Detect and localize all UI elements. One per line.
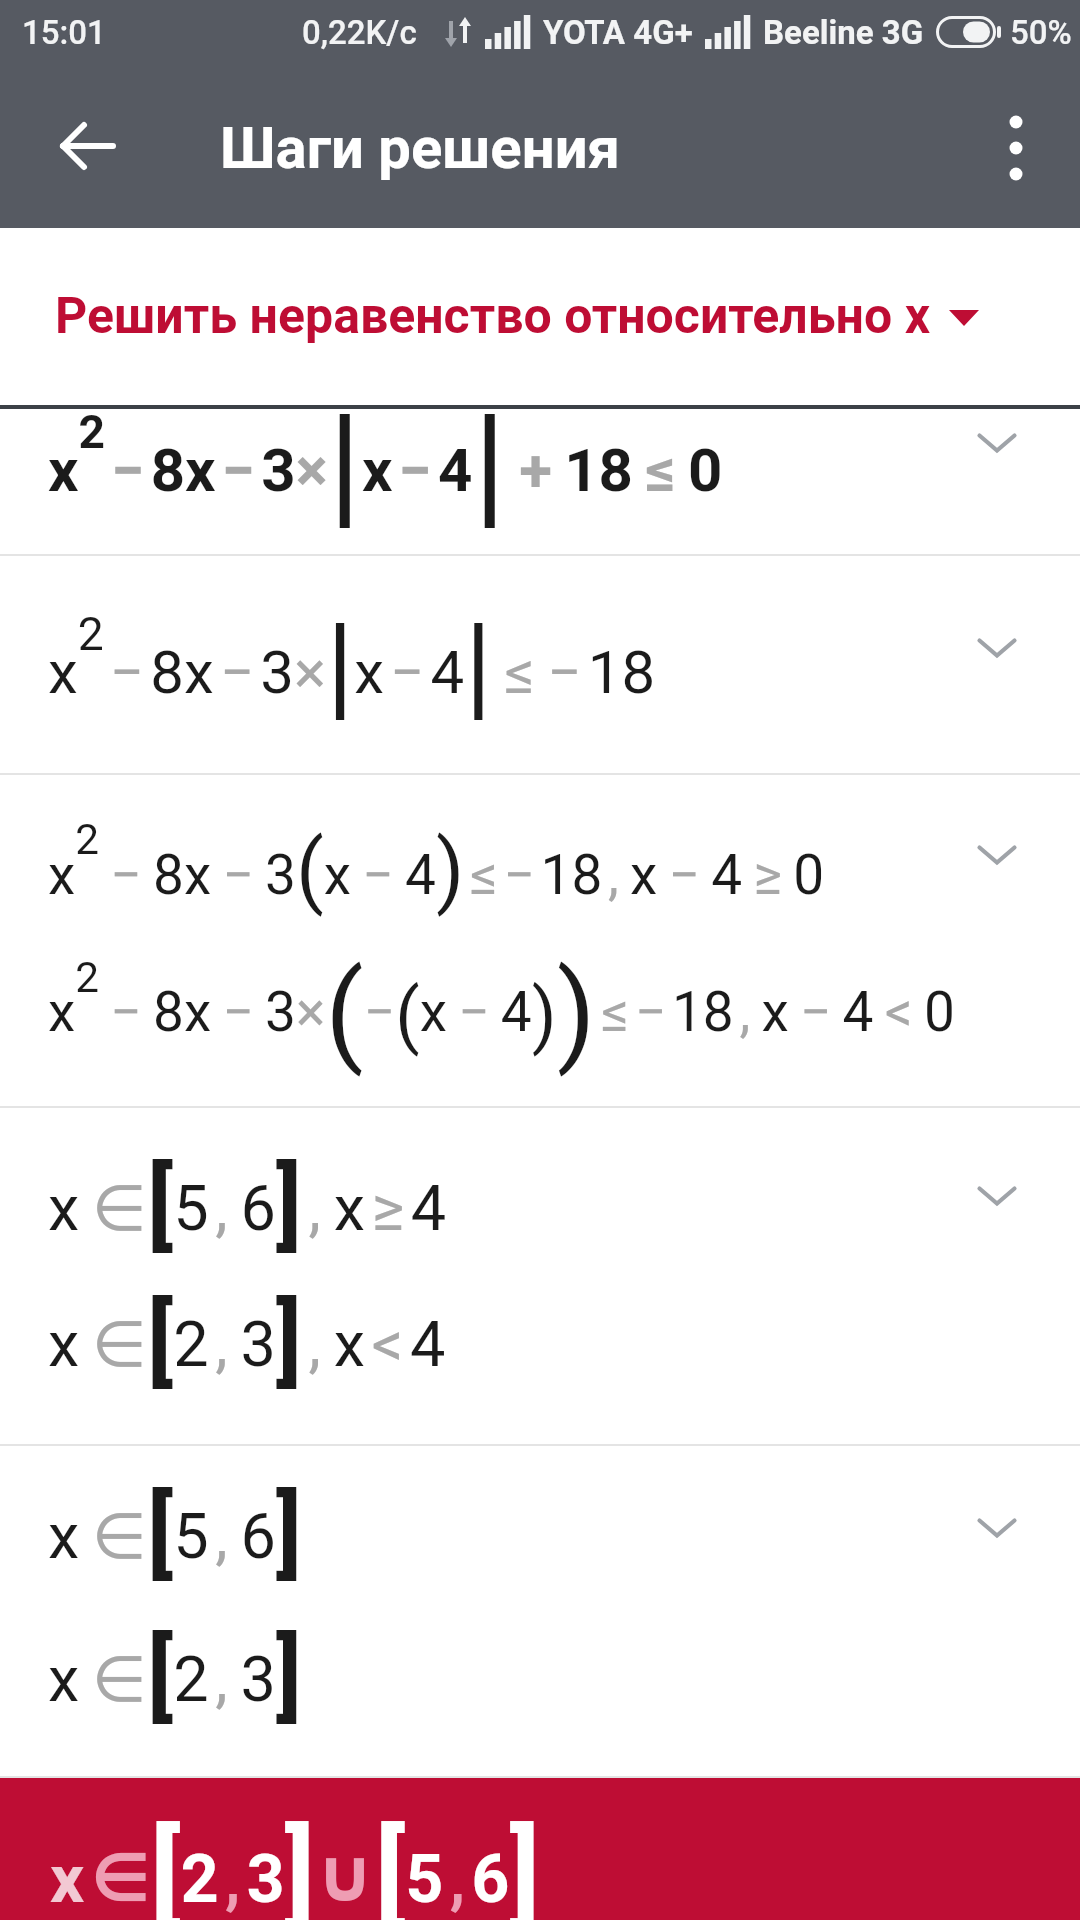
- button[interactable]: x2 − 8x − 3×|x − 4| ≤ − 18: [0, 556, 1080, 773]
- button[interactable]: x2 − 8x − 3(x − 4) ≤ − 18 , x − 4 ≥ 0: [0, 775, 1080, 1106]
- button[interactable]: x ∈[5 , 6] , x ≥ 4: [0, 1108, 1080, 1444]
- staticText: Шаги решения: [220, 114, 621, 182]
- staticText: x2 − 8x − 3×(−(x − 4)) ≤ − 18 , x − 4 < …: [48, 947, 955, 1078]
- staticText: x ∈[2 , 3]∪[5 , 6]: [50, 1810, 540, 1920]
- staticText: Beeline 3G: [763, 13, 924, 52]
- staticText: x2 − 8x − 3×|x − 4| + 18 ≤ 0: [48, 383, 723, 528]
- button[interactable]: [40, 116, 136, 176]
- button[interactable]: x2 − 8x − 3×|x − 4| + 18 ≤ 0: [0, 409, 1080, 554]
- staticText: x ∈[2 , 3] , x < 4: [48, 1285, 446, 1396]
- staticText: 0,22K/c: [302, 13, 417, 52]
- staticText: x ∈[5 , 6] , x ≥ 4: [48, 1149, 447, 1260]
- button[interactable]: Решить неравенство относительно x: [0, 228, 1080, 405]
- staticText: x ∈[5 , 6]: [48, 1477, 303, 1588]
- button[interactable]: [980, 106, 1052, 190]
- staticText: 50%: [1010, 13, 1072, 52]
- staticText: x2 − 8x − 3×|x − 4| ≤ − 18: [48, 598, 656, 733]
- staticText: x2 − 8x − 3(x − 4) ≤ − 18 , x − 4 ≥ 0: [48, 815, 825, 918]
- button[interactable]: x ∈[5 , 6]: [0, 1446, 1080, 1776]
- button[interactable]: x ∈[2 , 3]∪[5 , 6]: [0, 1778, 1080, 1920]
- staticText: Решить неравенство относительно x: [55, 287, 931, 346]
- staticText: x ∈[2 , 3]: [48, 1620, 303, 1731]
- staticText: 15:01: [22, 13, 106, 52]
- staticText: YOTA 4G+: [543, 13, 693, 52]
